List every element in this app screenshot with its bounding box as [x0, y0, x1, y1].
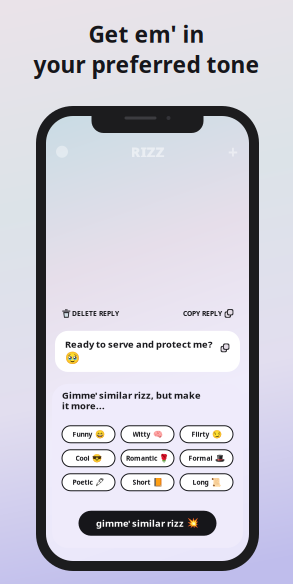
staticText: Poetic: [72, 478, 92, 487]
staticText: Romantic: [126, 454, 157, 463]
staticText: Formal: [188, 454, 212, 463]
button[interactable]: COPY REPLY: [183, 309, 233, 318]
button[interactable]: DELETE REPLY: [62, 309, 119, 318]
staticText: 🥹: [65, 351, 80, 365]
staticText: your preferred tone: [33, 49, 259, 79]
staticText: Ready to serve and protect me?: [65, 338, 212, 350]
staticText: Gimme' similar rizz, but make: [62, 389, 201, 401]
staticText: 😏: [211, 430, 221, 439]
button[interactable]: Cool: [62, 450, 115, 467]
button[interactable]: Long: [180, 474, 233, 491]
staticText: 🖋: [94, 478, 104, 487]
staticText: Funny: [72, 430, 92, 439]
staticText: 😄: [94, 430, 104, 439]
staticText: Witty: [132, 430, 150, 439]
staticText: 🌹: [159, 454, 169, 463]
staticText: it more...: [62, 399, 105, 412]
staticText: Long: [192, 478, 208, 487]
staticText: 📜: [210, 478, 220, 487]
button[interactable]: Formal: [180, 450, 233, 467]
button[interactable]: Poetic: [62, 474, 115, 491]
staticText: 🧠: [152, 430, 162, 439]
staticText: 😎: [91, 454, 101, 463]
staticText: Cool: [75, 454, 89, 463]
staticText: gimme' similar rizz: [96, 517, 184, 529]
button[interactable]: Short: [121, 474, 174, 491]
staticText: +: [228, 140, 238, 163]
staticText: RIZZ: [130, 142, 164, 161]
button[interactable]: Romantic: [121, 450, 174, 467]
button[interactable]: gimme' similar rizz: [78, 511, 216, 536]
staticText: Short: [132, 478, 150, 487]
staticText: 🎩: [214, 454, 224, 463]
button[interactable]: Flirty: [180, 426, 233, 443]
button[interactable]: Funny: [62, 426, 115, 443]
button[interactable]: Witty: [121, 426, 174, 443]
staticText: Get em' in: [88, 19, 204, 49]
staticText: Flirty: [191, 430, 209, 439]
staticText: COPY REPLY: [183, 309, 222, 318]
staticText: 📙: [152, 478, 162, 487]
staticText: DELETE REPLY: [72, 309, 119, 318]
staticText: 💥: [187, 518, 199, 529]
